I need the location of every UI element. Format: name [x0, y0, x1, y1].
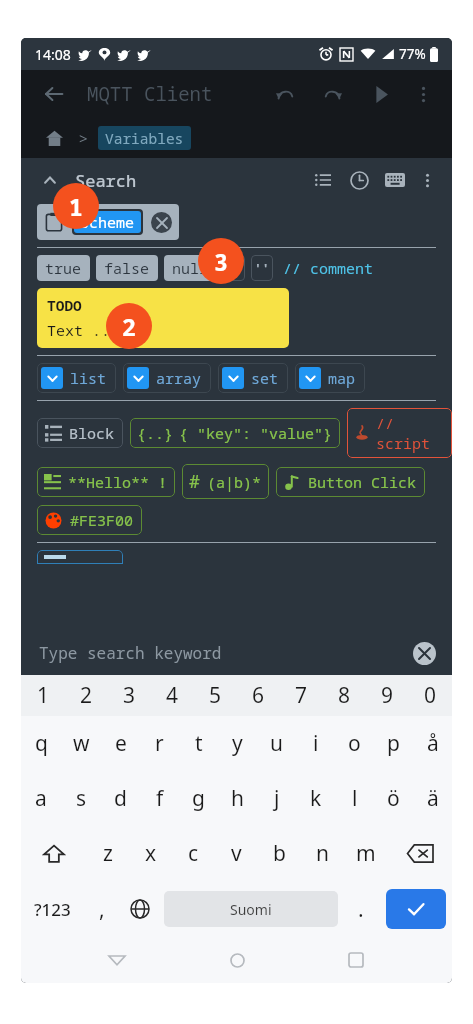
button[interactable]: e: [101, 716, 140, 771]
staticText: h: [231, 784, 244, 813]
button[interactable]: Redo: [316, 77, 350, 111]
button[interactable]: 5: [194, 675, 237, 716]
staticText: "": [226, 259, 242, 277]
button[interactable]: TODO: [37, 288, 289, 348]
button[interactable]: a: [21, 771, 61, 826]
button[interactable]: 6: [237, 675, 280, 716]
button[interactable]: q: [21, 716, 61, 771]
button[interactable]: 4: [151, 675, 194, 716]
button[interactable]: i: [296, 716, 335, 771]
button[interactable]: {..}: [130, 418, 340, 448]
button[interactable]: p: [374, 716, 413, 771]
button[interactable]: 7: [280, 675, 323, 716]
button[interactable]: map: [295, 363, 365, 393]
staticText: i: [313, 729, 319, 758]
button[interactable]: **Hello** !: [37, 467, 175, 497]
button[interactable]: array: [123, 363, 211, 393]
button[interactable]: Back: [39, 79, 69, 109]
button[interactable]: n: [301, 826, 344, 881]
staticText: ä: [427, 784, 439, 813]
button[interactable]: o: [335, 716, 374, 771]
button[interactable]: y: [218, 716, 257, 771]
button[interactable]: 2: [65, 675, 108, 716]
button[interactable]: l: [335, 771, 374, 826]
button[interactable]: x: [129, 826, 172, 881]
button[interactable]: u: [257, 716, 296, 771]
button[interactable]: Undo: [268, 77, 302, 111]
button[interactable]: 1: [21, 675, 65, 716]
button[interactable]: // script: [347, 408, 452, 458]
button[interactable]: b: [258, 826, 301, 881]
button[interactable]: d: [101, 771, 140, 826]
button[interactable]: Block: [37, 418, 123, 448]
staticText: Variables: [105, 128, 184, 148]
button[interactable]: ?123: [21, 881, 84, 937]
button[interactable]: v: [215, 826, 258, 881]
button[interactable]: 0: [409, 675, 452, 716]
button[interactable]: ö: [374, 771, 413, 826]
button[interactable]: z: [86, 826, 129, 881]
staticText: Suomi: [230, 900, 272, 919]
button[interactable]: 9: [366, 675, 409, 716]
button[interactable]: Type search keyword: [21, 631, 452, 675]
button[interactable]: Run: [364, 77, 398, 111]
button[interactable]: Enter: [386, 889, 446, 929]
staticText: j: [274, 784, 280, 813]
button[interactable]: r: [140, 716, 179, 771]
button[interactable]: Keyboard: [380, 165, 410, 195]
button[interactable]: Recents: [333, 937, 379, 983]
button[interactable]: f: [140, 771, 179, 826]
button[interactable]: More: [414, 167, 440, 193]
button[interactable]: Back: [94, 937, 140, 983]
button[interactable]: j: [257, 771, 296, 826]
staticText: array: [156, 368, 202, 388]
staticText: 1: [37, 681, 50, 710]
staticText: true: [45, 258, 82, 278]
button[interactable]: ä: [413, 771, 452, 826]
button[interactable]: Home: [214, 937, 260, 983]
button[interactable]: false: [96, 255, 158, 281]
button[interactable]: Shift: [21, 826, 86, 881]
button[interactable]: More options: [408, 79, 438, 109]
button[interactable]: m: [344, 826, 387, 881]
button[interactable]: 8: [323, 675, 366, 716]
staticText: false: [104, 258, 150, 278]
staticText: y: [232, 729, 243, 758]
button[interactable]: w: [61, 716, 101, 771]
button[interactable]: #: [182, 464, 269, 499]
button[interactable]: s: [61, 771, 101, 826]
button[interactable]: Home: [41, 125, 67, 151]
staticText: 1: [69, 191, 83, 222]
button[interactable]: 3: [108, 675, 151, 716]
button[interactable]: Clear search: [413, 642, 436, 665]
button[interactable]: Collapse: [37, 167, 63, 193]
button[interactable]: scheme: [37, 204, 179, 240]
button[interactable]: Variables: [98, 126, 191, 150]
button[interactable]: Suomi: [164, 891, 338, 927]
staticText: e: [115, 729, 127, 758]
button[interactable]: null: [164, 255, 217, 281]
button[interactable]: g: [179, 771, 218, 826]
staticText: MQTT Client: [87, 81, 213, 107]
button[interactable]: t: [179, 716, 218, 771]
button[interactable]: Button Click: [276, 467, 425, 497]
button[interactable]: [37, 550, 123, 564]
button[interactable]: å: [413, 716, 452, 771]
button[interactable]: "": [223, 255, 245, 281]
button[interactable]: c: [172, 826, 215, 881]
button[interactable]: true: [37, 255, 90, 281]
button[interactable]: k: [296, 771, 335, 826]
button[interactable]: '': [251, 255, 273, 281]
button[interactable]: Change language: [120, 881, 160, 937]
button[interactable]: h: [218, 771, 257, 826]
button[interactable]: List: [308, 165, 338, 195]
button[interactable]: Clear token: [151, 212, 172, 233]
button[interactable]: Backspace: [387, 826, 452, 881]
button[interactable]: #FE3F00: [37, 505, 142, 535]
button[interactable]: ,: [84, 881, 120, 937]
staticText: 0: [424, 681, 437, 710]
button[interactable]: .: [342, 881, 380, 937]
button[interactable]: History: [344, 165, 374, 195]
button[interactable]: set: [218, 363, 288, 393]
button[interactable]: list: [37, 363, 116, 393]
